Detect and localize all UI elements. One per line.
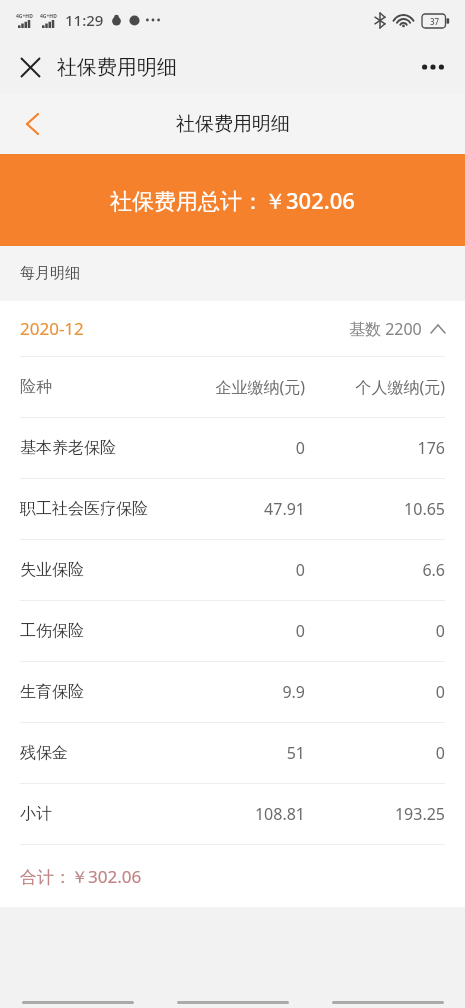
staticText: 0 [305,620,445,642]
staticText: 6.6 [305,559,445,581]
staticText: 0 [165,437,305,459]
staticText: 个人缴纳(元) [305,376,445,398]
staticText: 193.25 [305,803,445,825]
staticText: 0 [305,742,445,764]
staticText: 51 [165,742,305,764]
button[interactable]: Navigation [155,984,310,1004]
staticText: 社保费用总计：￥302.06 [110,185,355,215]
staticText: 176 [305,437,445,459]
staticText: 险种 [20,377,165,397]
staticText: 37 [430,16,440,27]
staticText: 残保金 [20,743,165,763]
staticText: 社保费用明细 [57,55,177,80]
button[interactable]: Close [14,51,46,83]
staticText: 0 [165,559,305,581]
staticText: 4G+HD [40,13,57,20]
staticText: 0 [165,620,305,642]
button[interactable]: Navigation [0,984,155,1004]
staticText: 职工社会医疗保险 [20,499,165,519]
staticText: 基本养老保险 [20,438,165,458]
staticText: 9.9 [165,681,305,703]
staticText: 11:29 [65,10,104,30]
staticText: 失业保险 [20,560,165,580]
button[interactable]: More options [413,47,453,87]
staticText: 2020-12 [20,317,84,340]
staticText: 每月明细 [20,264,80,283]
button[interactable]: Navigation [310,984,465,1004]
staticText: 47.91 [165,498,305,520]
staticText: 4G+HD [16,13,33,20]
staticText: 社保费用明细 [176,112,290,136]
staticText: 基数 2200 [349,318,422,340]
staticText: 10.65 [305,498,445,520]
staticText: 合计：￥302.06 [20,865,142,888]
button[interactable]: Back [12,104,52,144]
button[interactable]: 2020-12 [0,301,465,356]
staticText: 小计 [20,804,165,824]
staticText: 工伤保险 [20,621,165,641]
staticText: 生育保险 [20,682,165,702]
staticText: 企业缴纳(元) [165,376,305,398]
staticText: 0 [305,681,445,703]
staticText: 108.81 [165,803,305,825]
